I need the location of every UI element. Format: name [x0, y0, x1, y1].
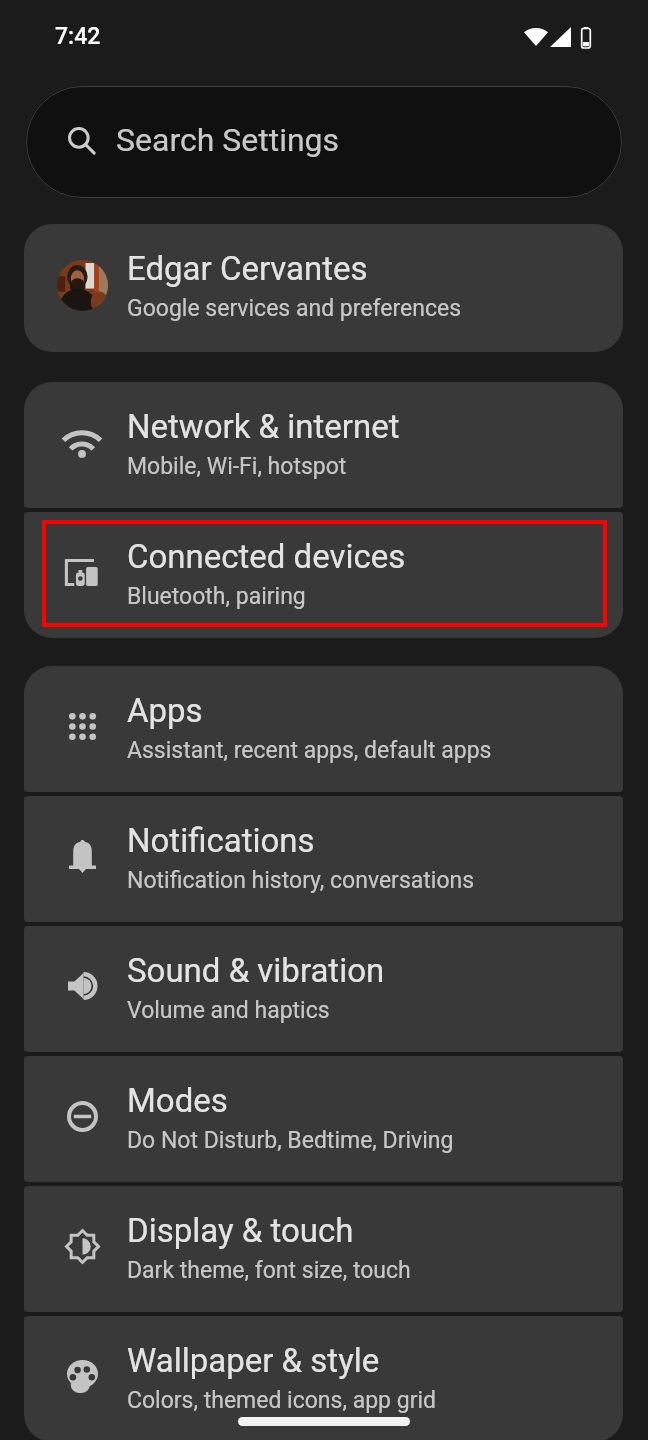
button[interactable]: Modes	[24, 1056, 623, 1182]
staticText: Do Not Disturb, Bedtime, Driving	[127, 1127, 454, 1154]
staticText: Google services and preferences	[127, 295, 462, 322]
button[interactable]: Wallpaper & style	[24, 1316, 623, 1440]
staticText: Network & internet	[127, 407, 400, 446]
button[interactable]: Notifications	[24, 796, 623, 922]
other: Search	[68, 127, 95, 154]
staticText: Connected devices	[127, 537, 406, 576]
staticText: Assistant, recent apps, default apps	[127, 737, 492, 764]
staticText: Notifications	[127, 821, 315, 860]
staticText: Notification history, conversations	[127, 867, 475, 894]
staticText: Search Settings	[116, 121, 340, 159]
staticText: Colors, themed icons, app grid	[127, 1387, 436, 1414]
staticText: Wallpaper & style	[127, 1341, 380, 1380]
staticText: Sound & vibration	[127, 951, 385, 990]
button[interactable]: Display & touch	[24, 1186, 623, 1312]
staticText: Modes	[127, 1081, 228, 1120]
button[interactable]: Sound & vibration	[24, 926, 623, 1052]
button[interactable]: Apps	[24, 666, 623, 792]
staticText: Display & touch	[127, 1211, 354, 1250]
staticText: Volume and haptics	[127, 997, 330, 1024]
staticText: 7:42	[55, 23, 101, 50]
staticText: Apps	[127, 691, 203, 730]
button[interactable]: Search	[26, 86, 622, 198]
button[interactable]: Network & internet	[24, 382, 623, 508]
staticText: Bluetooth, pairing	[127, 583, 306, 610]
staticText: Mobile, Wi-Fi, hotspot	[127, 453, 347, 480]
staticText: Dark theme, font size, touch	[127, 1257, 411, 1284]
button[interactable]: Connected devices	[24, 512, 623, 638]
button[interactable]: Edgar Cervantes	[24, 224, 623, 352]
staticText: Edgar Cervantes	[127, 249, 368, 288]
